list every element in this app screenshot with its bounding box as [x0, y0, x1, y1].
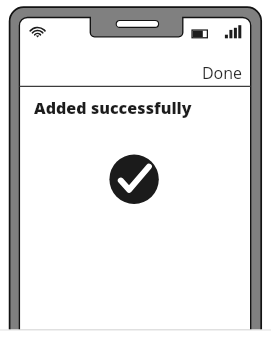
button[interactable]: Done: [196, 58, 248, 84]
button[interactable]: Added successfully: [110, 154, 160, 204]
